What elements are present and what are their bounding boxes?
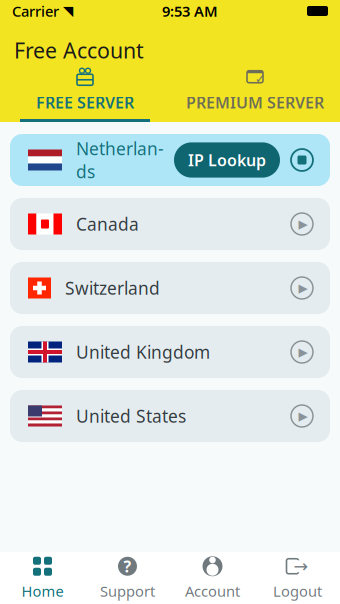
staticText: Logout: [273, 581, 322, 601]
button[interactable]: Switzerland: [10, 262, 330, 314]
staticText: 9:53 AM: [162, 1, 218, 21]
staticText: Canada: [76, 212, 139, 235]
staticText: United States: [76, 404, 186, 427]
staticText: Support: [100, 581, 155, 601]
staticText: ▶: [298, 281, 307, 295]
staticText: United Kingdom: [76, 340, 210, 363]
staticText: ?: [123, 556, 131, 577]
staticText: Netherlands: [76, 137, 164, 183]
staticText: ◥: [63, 3, 73, 18]
staticText: Account: [185, 581, 240, 601]
button[interactable]: ✓: [170, 68, 340, 122]
button[interactable]: Netherlands: [10, 134, 330, 186]
staticText: Carrier: [12, 1, 59, 21]
staticText: FREE SERVER: [36, 92, 134, 113]
button[interactable]: United States: [10, 390, 330, 442]
staticText: ✓: [255, 72, 265, 86]
staticText: ▶: [298, 217, 307, 231]
staticText: IP Lookup: [188, 149, 266, 171]
staticText: PREMIUM SERVER: [186, 92, 324, 113]
staticText: ▶: [298, 345, 307, 359]
staticText: Free Account: [14, 36, 144, 64]
button[interactable]: Account: [170, 552, 255, 604]
staticText: Switzerland: [65, 276, 160, 299]
staticText: Home: [21, 581, 63, 601]
button[interactable]: FREE SERVER: [0, 68, 170, 122]
staticText: ▶: [298, 409, 307, 423]
button[interactable]: →: [255, 552, 340, 604]
button[interactable]: ?: [85, 552, 170, 604]
button[interactable]: United Kingdom: [10, 326, 330, 378]
button[interactable]: Home: [0, 552, 85, 604]
button[interactable]: Canada: [10, 198, 330, 250]
staticText: →: [293, 556, 308, 576]
